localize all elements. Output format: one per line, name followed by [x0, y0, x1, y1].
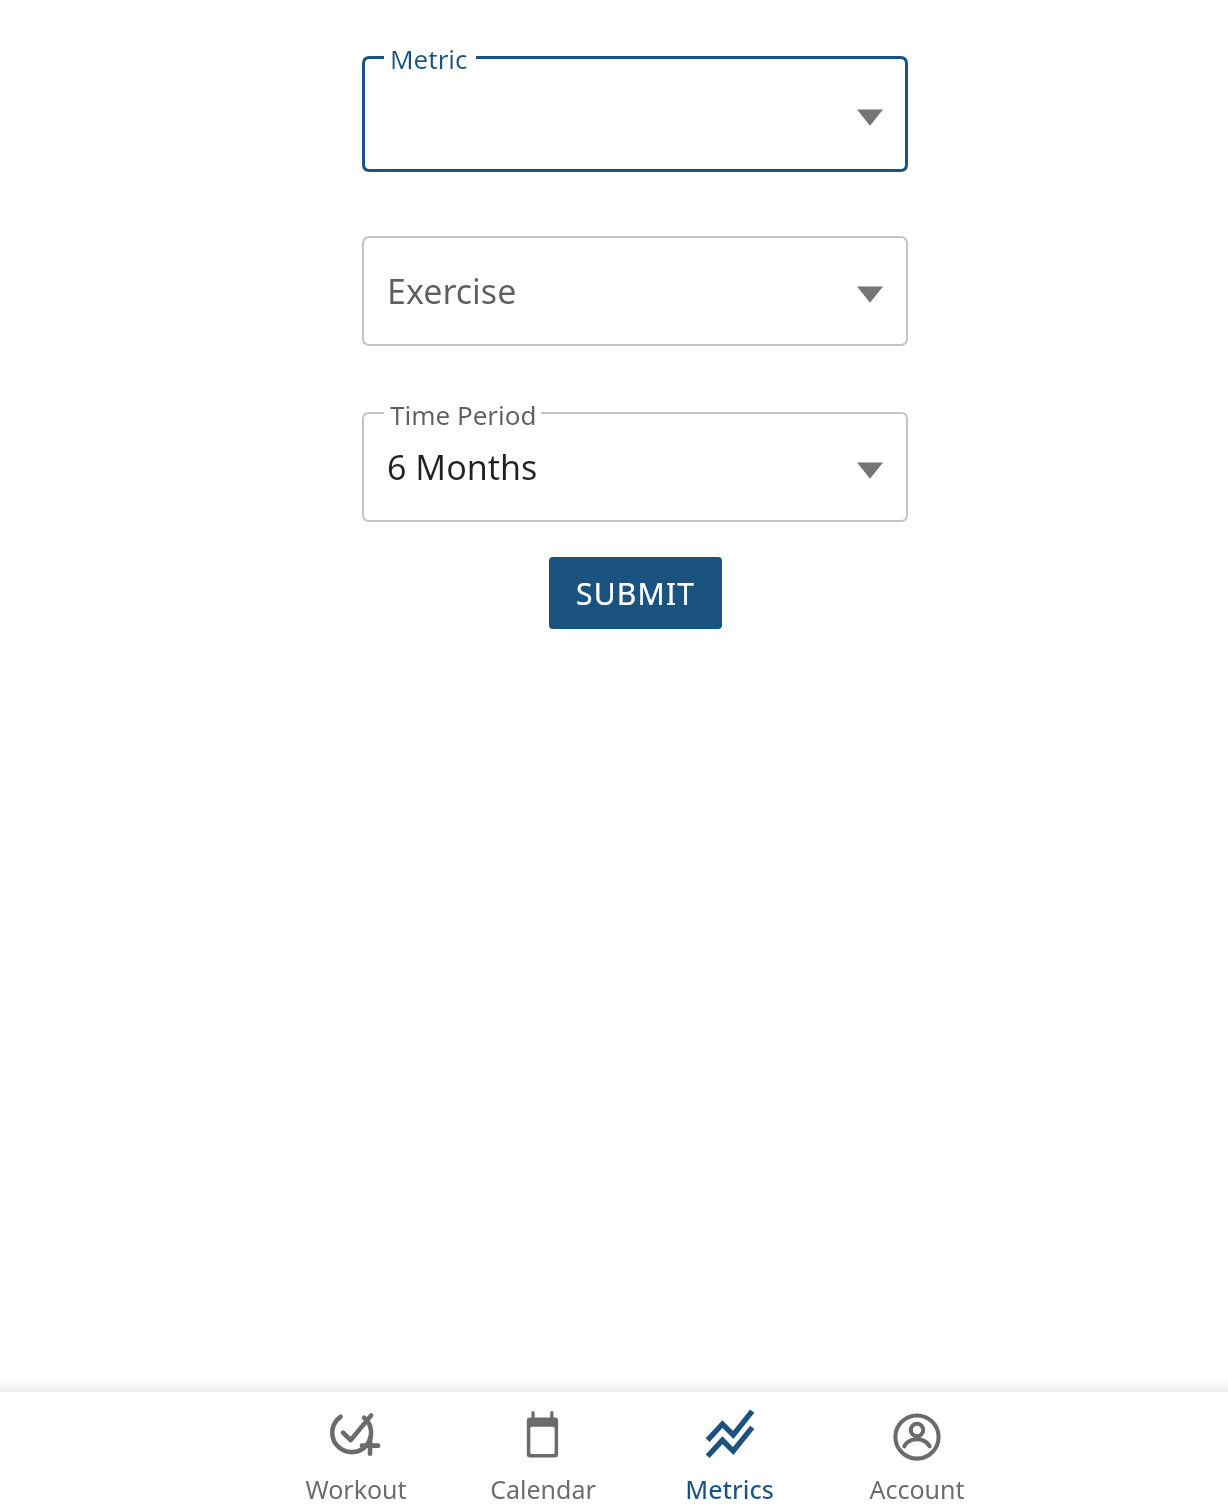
button[interactable]: SUBMIT — [549, 557, 722, 629]
staticText: Time Period — [390, 397, 537, 432]
staticText: Metrics — [685, 1472, 774, 1504]
staticText: Exercise — [387, 268, 517, 314]
button[interactable]: Calendar — [449, 1392, 636, 1504]
staticText: 6 Months — [387, 444, 538, 490]
button[interactable]: Workout — [262, 1392, 449, 1504]
other: Metrics — [703, 1410, 757, 1464]
button[interactable]: Account — [823, 1392, 1010, 1504]
other: Workout — [329, 1410, 383, 1464]
button[interactable]: Metric — [362, 56, 908, 172]
staticText: Account — [869, 1472, 965, 1504]
other: Account — [890, 1410, 944, 1464]
other: Calendar — [516, 1410, 570, 1464]
staticText: Metric — [390, 41, 468, 76]
staticText: SUBMIT — [576, 573, 696, 614]
button[interactable]: Metrics — [636, 1392, 823, 1504]
staticText: Workout — [305, 1472, 407, 1504]
button[interactable]: Time Period — [362, 412, 908, 522]
staticText: Calendar — [490, 1472, 596, 1504]
button[interactable]: Exercise — [362, 236, 908, 346]
